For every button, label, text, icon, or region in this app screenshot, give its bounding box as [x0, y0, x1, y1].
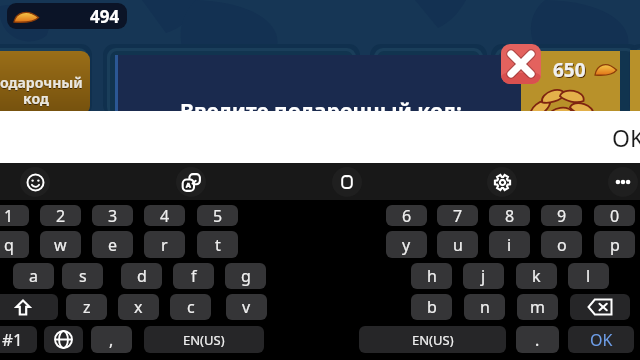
- staticText: 8: [505, 205, 515, 226]
- button[interactable]: k: [516, 263, 557, 289]
- button[interactable]: e: [92, 231, 133, 258]
- button[interactable]: l: [568, 263, 609, 289]
- staticText: d: [137, 265, 147, 287]
- button[interactable]: c: [170, 294, 211, 320]
- button[interactable]: u: [437, 231, 478, 258]
- staticText: q: [4, 234, 14, 256]
- button[interactable]: 494: [7, 3, 127, 29]
- button[interactable]: 6: [386, 205, 427, 226]
- button[interactable]: m: [517, 294, 558, 320]
- staticText: OK: [612, 122, 640, 153]
- button[interactable]: Shift: [0, 294, 58, 320]
- button[interactable]: [521, 51, 620, 115]
- button[interactable]: y: [386, 231, 427, 258]
- staticText: 650: [553, 57, 586, 77]
- button[interactable]: f: [173, 263, 214, 289]
- staticText: OK: [590, 329, 613, 351]
- button[interactable]: 5: [197, 205, 238, 226]
- button[interactable]: Settings: [485, 165, 519, 199]
- staticText: 6: [402, 205, 412, 226]
- button[interactable]: 3: [92, 205, 133, 226]
- staticText: t: [215, 234, 221, 256]
- staticText: Подарочный код: [0, 73, 83, 108]
- button[interactable]: 4: [144, 205, 185, 226]
- button[interactable]: q: [0, 231, 29, 258]
- button[interactable]: h: [411, 263, 452, 289]
- staticText: w: [54, 234, 67, 256]
- staticText: c: [187, 296, 195, 318]
- button[interactable]: 2: [40, 205, 81, 226]
- staticText: x: [134, 296, 143, 318]
- button[interactable]: r: [144, 231, 185, 258]
- staticText: 2: [56, 205, 66, 226]
- button[interactable]: OK: [568, 326, 634, 353]
- staticText: 494: [90, 5, 120, 28]
- button[interactable]: Emoji: [18, 165, 52, 199]
- button[interactable]: More options: [606, 165, 640, 199]
- button[interactable]: w: [40, 231, 81, 258]
- button[interactable]: 7: [437, 205, 478, 226]
- button[interactable]: EN(US): [144, 326, 264, 353]
- button[interactable]: Close: [501, 44, 541, 84]
- button[interactable]: x: [118, 294, 159, 320]
- button[interactable]: EN(US): [359, 326, 506, 353]
- staticText: y: [402, 234, 411, 256]
- button[interactable]: ,: [91, 326, 132, 353]
- button[interactable]: v: [226, 294, 267, 320]
- staticText: a: [29, 265, 38, 287]
- button[interactable]: Change language: [44, 326, 83, 353]
- staticText: Введите подарочный код:: [180, 97, 462, 126]
- staticText: EN(US): [412, 331, 454, 349]
- staticText: #1: [2, 328, 23, 351]
- button[interactable]: 1: [0, 205, 29, 226]
- staticText: g: [241, 265, 251, 287]
- button[interactable]: .: [516, 326, 559, 353]
- staticText: s: [79, 265, 87, 287]
- staticText: 9: [557, 205, 567, 226]
- button[interactable]: s: [62, 263, 103, 289]
- staticText: e: [108, 234, 118, 256]
- button[interactable]: j: [463, 263, 504, 289]
- staticText: 3: [108, 205, 118, 226]
- button[interactable]: Backspace: [570, 294, 630, 320]
- staticText: i: [507, 234, 512, 256]
- button[interactable]: b: [411, 294, 452, 320]
- staticText: .: [535, 329, 540, 351]
- button[interactable]: Подарочный код: [0, 51, 90, 115]
- button[interactable]: o: [541, 231, 582, 258]
- staticText: EN(US): [183, 331, 225, 349]
- button[interactable]: Clipboard: [330, 165, 364, 199]
- staticText: u: [453, 234, 463, 256]
- staticText: n: [480, 296, 490, 318]
- button[interactable]: i: [489, 231, 530, 258]
- staticText: 1: [4, 205, 14, 226]
- button[interactable]: 8: [489, 205, 530, 226]
- button[interactable]: t: [197, 231, 238, 258]
- button[interactable]: 9: [541, 205, 582, 226]
- staticText: j: [481, 265, 486, 287]
- button[interactable]: #1: [0, 326, 37, 353]
- button[interactable]: Translate: [174, 165, 208, 199]
- staticText: l: [586, 265, 591, 287]
- staticText: ,: [109, 329, 114, 351]
- staticText: k: [532, 265, 541, 287]
- staticText: 0: [610, 205, 620, 226]
- staticText: 5: [213, 205, 223, 226]
- staticText: b: [427, 296, 437, 318]
- staticText: o: [557, 234, 567, 256]
- button[interactable]: 0: [594, 205, 635, 226]
- button[interactable]: n: [464, 294, 505, 320]
- button[interactable]: a: [13, 263, 54, 289]
- staticText: 650: [554, 58, 587, 78]
- button[interactable]: g: [225, 263, 266, 289]
- staticText: z: [83, 296, 91, 318]
- button[interactable]: z: [66, 294, 107, 320]
- staticText: m: [530, 296, 545, 318]
- button[interactable]: d: [121, 263, 162, 289]
- button[interactable]: p: [594, 231, 635, 258]
- staticText: h: [427, 265, 437, 287]
- staticText: r: [161, 234, 168, 256]
- staticText: 7: [453, 205, 463, 226]
- staticText: p: [610, 234, 620, 256]
- staticText: v: [242, 296, 251, 318]
